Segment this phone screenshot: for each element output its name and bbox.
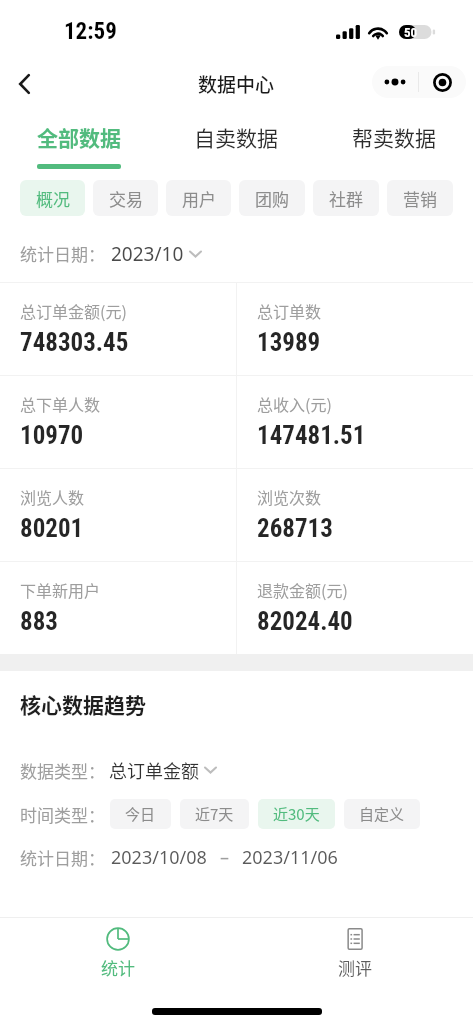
staticText: 2023/11/06 xyxy=(242,845,338,870)
button[interactable]: 浏览次数 xyxy=(237,468,473,561)
staticText: 统计日期： xyxy=(20,845,105,870)
staticText: 2023/10 xyxy=(111,241,184,267)
button[interactable]: 总下单人数 xyxy=(0,375,236,468)
staticText: 总下单人数 xyxy=(20,392,101,415)
staticText: 浏览人数 xyxy=(20,485,85,508)
button[interactable]: 统计 xyxy=(0,918,236,989)
staticText: 50 xyxy=(404,25,418,39)
staticText: 时间类型： xyxy=(20,802,105,827)
staticText: 浏览次数 xyxy=(257,485,322,508)
button[interactable]: 自定义 xyxy=(344,799,420,829)
staticText: 82024.40 xyxy=(257,607,353,636)
staticText: – xyxy=(220,845,229,870)
staticText: 自定义 xyxy=(359,803,405,825)
staticText: 268713 xyxy=(257,514,333,543)
button[interactable]: 概况 xyxy=(20,180,85,216)
button[interactable]: 用户 xyxy=(166,180,231,216)
button[interactable]: 总订单金额 xyxy=(109,757,217,783)
staticText: 全部数据 xyxy=(37,122,121,152)
staticText: 今日 xyxy=(125,803,156,825)
staticText: 总订单数 xyxy=(257,299,322,322)
staticText: 统计 xyxy=(101,955,135,980)
button[interactable]: 近7天 xyxy=(180,799,249,829)
button[interactable]: 帮卖数据 xyxy=(315,109,473,171)
button[interactable]: 2023/10 xyxy=(111,241,202,267)
staticText: 数据中心 xyxy=(198,70,275,98)
button[interactable]: 总订单数 xyxy=(237,282,473,375)
button[interactable]: 浏览人数 xyxy=(0,468,236,561)
staticText: 自卖数据 xyxy=(194,122,278,152)
button[interactable]: 全部数据 xyxy=(0,109,157,171)
button[interactable]: 今日 xyxy=(110,799,171,829)
button[interactable]: 自卖数据 xyxy=(157,109,315,171)
staticText: 团购 xyxy=(255,186,289,211)
staticText: 用户 xyxy=(182,186,216,211)
staticText: 总订单金额(元) xyxy=(20,299,127,322)
button[interactable]: 社群 xyxy=(313,180,379,216)
staticText: 10970 xyxy=(20,421,84,450)
staticText: 13989 xyxy=(257,328,321,357)
staticText: 147481.51 xyxy=(257,421,366,450)
staticText: 退款金额(元) xyxy=(257,578,348,601)
staticText: 交易 xyxy=(109,186,143,211)
button[interactable]: 近30天 xyxy=(258,799,335,829)
button[interactable]: 团购 xyxy=(239,180,305,216)
button[interactable]: More xyxy=(372,66,418,98)
staticText: 748303.45 xyxy=(20,328,129,357)
staticText: 营销 xyxy=(403,186,437,211)
button[interactable]: 总收入(元) xyxy=(237,375,473,468)
button[interactable]: 测评 xyxy=(236,918,473,989)
button[interactable]: 退款金额(元) xyxy=(237,561,473,654)
staticText: 12:59 xyxy=(64,18,117,45)
button[interactable]: 交易 xyxy=(93,180,158,216)
staticText: 总收入(元) xyxy=(257,392,332,415)
staticText: 概况 xyxy=(36,186,70,211)
button[interactable]: Close xyxy=(419,66,466,98)
staticText: 80201 xyxy=(20,514,84,543)
staticText: 总订单金额 xyxy=(109,757,199,783)
staticText: 统计日期： xyxy=(20,241,105,266)
button[interactable]: 总订单金额(元) xyxy=(0,282,236,375)
staticText: 2023/10/08 xyxy=(111,845,207,870)
staticText: 数据类型： xyxy=(20,758,105,783)
staticText: 下单新用户 xyxy=(20,578,101,601)
staticText: 帮卖数据 xyxy=(352,122,436,152)
staticText: 测评 xyxy=(338,955,372,980)
button[interactable]: 下单新用户 xyxy=(0,561,236,654)
staticText: 883 xyxy=(20,607,58,636)
staticText: 近7天 xyxy=(195,803,234,825)
button[interactable]: Back xyxy=(2,62,46,106)
staticText: 近30天 xyxy=(273,803,320,825)
button[interactable]: 营销 xyxy=(387,180,453,216)
staticText: 社群 xyxy=(329,186,363,211)
staticText: 核心数据趋势 xyxy=(20,689,146,719)
